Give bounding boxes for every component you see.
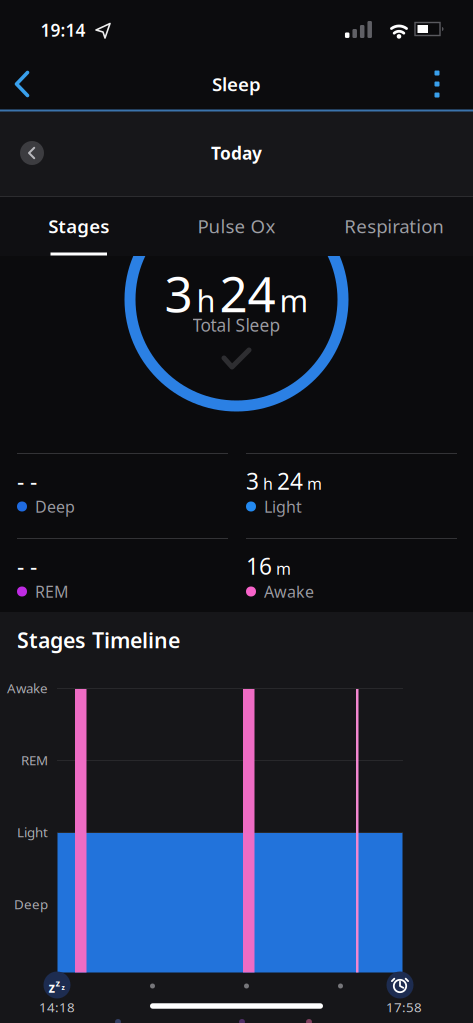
staticText: Light <box>17 823 48 841</box>
button[interactable]: Back <box>0 62 44 106</box>
button[interactable]: Bedtime <box>43 971 70 998</box>
staticText: h <box>263 473 273 494</box>
staticText: 19:14 <box>40 18 85 41</box>
staticText: 16 <box>246 551 272 581</box>
staticText: 14:18 <box>39 998 75 1016</box>
staticText: Respiration <box>344 214 444 238</box>
staticText: z <box>48 979 55 996</box>
staticText: 24 <box>277 466 303 496</box>
staticText: Awake <box>264 581 314 602</box>
staticText: Stages Timeline <box>17 626 180 654</box>
button[interactable]: Respiration <box>316 198 473 254</box>
button[interactable]: Stages <box>0 198 157 254</box>
staticText: 17:58 <box>386 998 422 1016</box>
staticText: Today <box>211 141 262 164</box>
staticText: REM <box>21 751 48 769</box>
staticText: m <box>279 280 308 321</box>
staticText: z <box>55 977 60 989</box>
staticText: REM <box>35 581 69 602</box>
staticText: m <box>307 473 322 494</box>
staticText: Deep <box>14 895 48 913</box>
staticText: Light <box>264 496 302 517</box>
staticText: 24 <box>219 260 275 326</box>
button[interactable]: Today <box>211 141 262 164</box>
staticText: z <box>61 983 64 992</box>
button[interactable]: More options <box>415 62 459 106</box>
staticText: 3 <box>246 466 259 496</box>
staticText: - - <box>17 466 37 496</box>
button[interactable]: Previous day <box>20 141 44 165</box>
staticText: - - <box>17 551 37 581</box>
staticText: Sleep <box>212 72 261 96</box>
staticText: Deep <box>35 496 75 517</box>
staticText: m <box>276 558 291 579</box>
staticText: 3 <box>164 260 192 326</box>
button[interactable]: Pulse Ox <box>158 198 315 254</box>
staticText: h <box>196 280 215 321</box>
staticText: Total Sleep <box>192 313 280 336</box>
button[interactable]: Wake time <box>386 971 413 998</box>
staticText: Awake <box>7 679 48 697</box>
staticText: Stages <box>48 214 109 238</box>
staticText: Pulse Ox <box>197 214 275 238</box>
